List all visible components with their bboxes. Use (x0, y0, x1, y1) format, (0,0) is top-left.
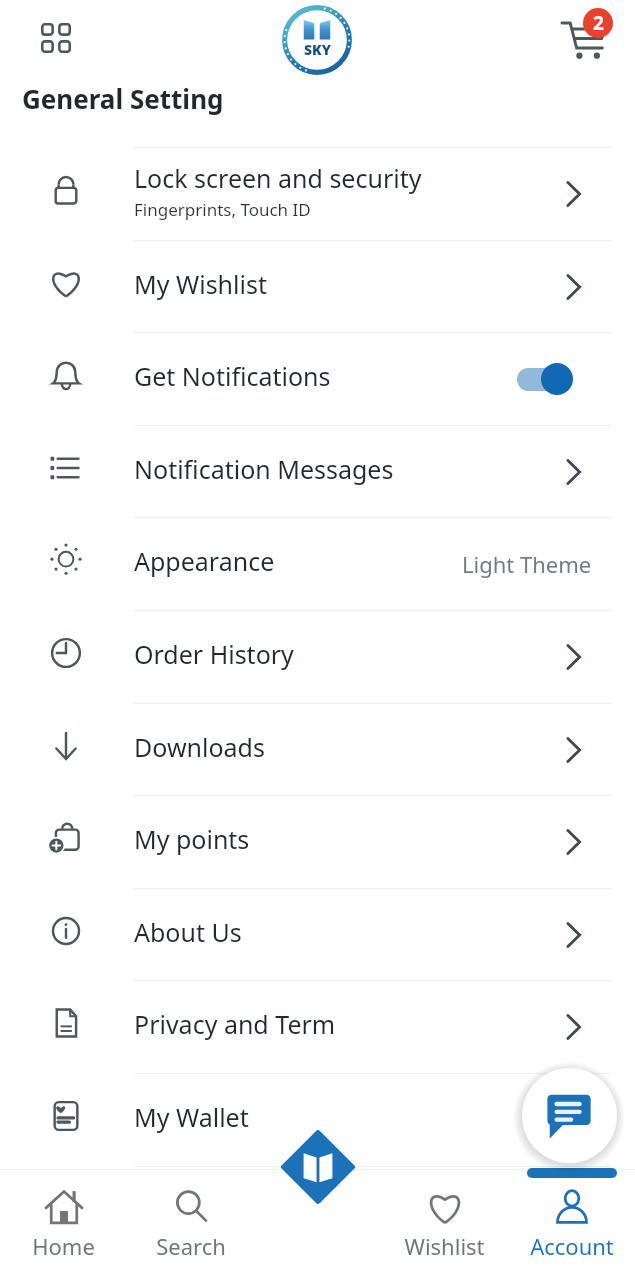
button[interactable]: Search (127, 1169, 254, 1280)
staticText: SKY (304, 40, 331, 59)
button[interactable]: Privacy and Term (0, 981, 635, 1074)
button[interactable]: My points (0, 796, 635, 889)
button[interactable]: Menu (32, 14, 80, 62)
staticText: Get Notifications (134, 359, 331, 393)
staticText: Order History (134, 637, 294, 671)
staticText: Home (32, 1231, 95, 1261)
staticText: My points (134, 822, 250, 856)
button[interactable]: Notification Messages (0, 426, 635, 518)
button[interactable]: Get Notifications (0, 333, 635, 426)
staticText: Notification Messages (134, 452, 394, 486)
staticText: Lock screen and security (134, 161, 422, 195)
staticText: Privacy and Term (134, 1007, 336, 1041)
button[interactable]: Downloads (0, 704, 635, 796)
button[interactable]: My Wallet (0, 1074, 635, 1167)
button[interactable]: Appearance (0, 518, 635, 611)
button[interactable]: Home (0, 1169, 127, 1280)
button[interactable]: Wishlist (381, 1169, 508, 1280)
staticText: Search (156, 1231, 226, 1261)
staticText: About Us (134, 915, 242, 949)
button[interactable]: About Us (0, 889, 635, 981)
button[interactable]: My Wishlist (0, 241, 635, 333)
staticText: Light Theme (462, 549, 592, 579)
staticText: My Wishlist (134, 267, 267, 301)
button[interactable]: Order History (0, 611, 635, 704)
staticText: Fingerprints, Touch ID (134, 198, 311, 221)
button[interactable]: Chat (522, 1068, 617, 1163)
staticText: 2 (593, 10, 604, 36)
button[interactable]: Cart (549, 0, 615, 66)
button[interactable]: Books (278, 1127, 358, 1207)
button[interactable]: Lock screen and security (0, 148, 635, 241)
staticText: General Setting (22, 81, 224, 116)
staticText: Downloads (134, 730, 265, 764)
staticText: Wishlist (404, 1231, 485, 1261)
staticText: Appearance (134, 544, 275, 578)
button[interactable]: Account (508, 1169, 635, 1280)
staticText: My Wallet (134, 1100, 249, 1134)
staticText: Account (530, 1231, 614, 1261)
